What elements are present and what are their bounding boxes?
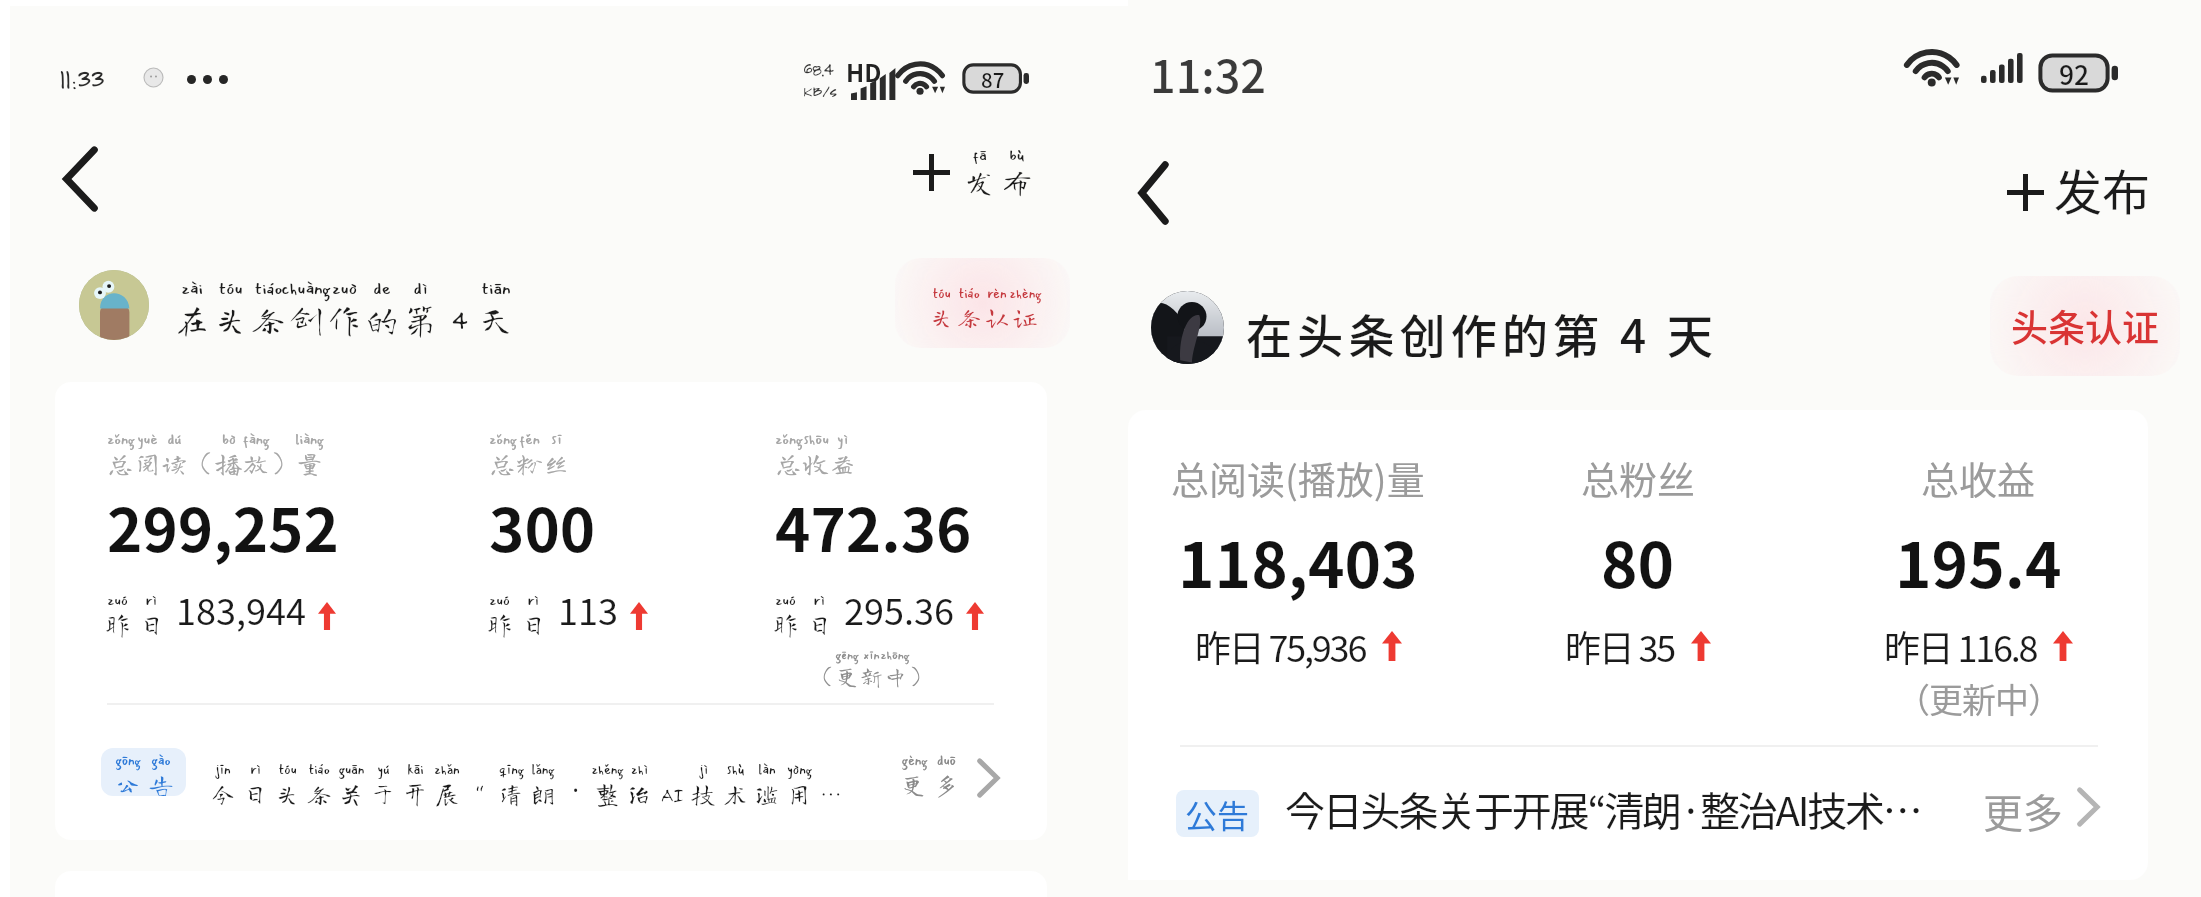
staticText: 布 xyxy=(1002,167,1032,197)
staticText: 总收益 xyxy=(1921,450,2036,505)
staticText: 昨日 116.8 xyxy=(1884,620,2037,672)
staticText: 299,252 xyxy=(107,482,339,569)
staticText: 在 xyxy=(175,302,209,336)
staticText: tiān xyxy=(481,275,511,302)
staticText: 播 xyxy=(215,450,242,476)
staticText: fā xyxy=(972,143,987,167)
staticText: 条 xyxy=(957,305,981,329)
staticText: zuò xyxy=(332,275,357,302)
staticText: 证 xyxy=(1013,305,1037,329)
button[interactable]: Back xyxy=(33,131,129,227)
staticText: … xyxy=(818,781,844,806)
staticText: HD xyxy=(846,54,882,89)
staticText: 80 xyxy=(1601,516,1675,606)
staticText: 治 xyxy=(626,781,652,806)
staticText: 昨 xyxy=(104,611,131,637)
staticText: 昨 xyxy=(486,611,513,637)
staticText: 整 xyxy=(594,781,620,806)
staticText: 创 xyxy=(289,302,323,336)
staticText: 头 xyxy=(213,302,247,336)
staticText: 更多 xyxy=(1983,782,2063,840)
staticText: 今日头条关于开展“清朗·整治AI技术… xyxy=(1285,780,1921,838)
staticText: 68.4 xyxy=(803,58,833,80)
staticText: 472.36 xyxy=(775,482,972,569)
button[interactable]: 发布 xyxy=(1994,148,2154,236)
staticText: 118,403 xyxy=(1178,516,1418,606)
staticText: 发布 xyxy=(2054,154,2151,224)
staticText: 更 xyxy=(901,772,927,797)
staticText: 技 xyxy=(690,781,716,806)
staticText: tóu xyxy=(278,760,297,781)
staticText: （更新中） xyxy=(1896,674,2061,723)
staticText: 更 xyxy=(836,665,859,688)
staticText: 开 xyxy=(402,781,428,806)
button[interactable]: 公告 xyxy=(1128,762,2148,872)
staticText: 昨 xyxy=(772,611,799,637)
staticText: tóu xyxy=(218,275,243,302)
staticText: 4 xyxy=(451,302,466,336)
button[interactable]: Profile photo xyxy=(1151,291,1224,364)
staticText: de xyxy=(373,275,391,302)
staticText: 告 xyxy=(148,772,174,796)
staticText: guān xyxy=(338,760,365,781)
staticText: 92 xyxy=(2059,54,2090,92)
staticText: 11:33 xyxy=(59,61,104,95)
button[interactable]: 在头条创作的第 4 天 xyxy=(1246,300,1719,367)
staticText: xīn xyxy=(863,646,880,665)
staticText: yú xyxy=(377,760,390,781)
staticText: gèng xyxy=(901,751,928,772)
staticText: 天 xyxy=(479,302,513,336)
staticText: 认 xyxy=(985,305,1009,329)
staticText: gōng xyxy=(115,751,141,772)
staticText: yòng xyxy=(787,760,812,781)
staticText: zhōng xyxy=(880,646,910,665)
button[interactable]: tóu xyxy=(895,258,1070,348)
staticText: yuè xyxy=(137,428,158,450)
staticText: 总 xyxy=(107,450,134,476)
staticText: shōu xyxy=(803,428,829,450)
staticText: 113 xyxy=(558,583,618,635)
staticText: qīng xyxy=(499,760,524,781)
staticText: · xyxy=(572,772,579,806)
staticText: 公 xyxy=(115,772,141,796)
staticText: KB/s xyxy=(803,80,837,100)
staticText: shù xyxy=(726,760,745,781)
staticText: liàng xyxy=(295,428,324,450)
staticText: tiáo xyxy=(308,760,330,781)
button[interactable]: Back xyxy=(1106,145,1202,241)
staticText: fěn xyxy=(519,428,540,450)
button[interactable]: zài xyxy=(173,275,515,336)
staticText: zuó xyxy=(775,589,796,611)
staticText: 300 xyxy=(489,482,596,569)
staticText: 295.36 xyxy=(844,583,954,635)
staticText: 多 xyxy=(933,772,959,797)
staticText: 放 xyxy=(242,450,269,476)
staticText: zuó xyxy=(489,589,510,611)
staticText: zǒng xyxy=(489,428,517,450)
staticText: 术 xyxy=(722,781,748,806)
staticText: 昨日 35 xyxy=(1565,620,1675,672)
staticText: 益 xyxy=(829,450,856,476)
button[interactable]: gōng xyxy=(55,727,1047,827)
staticText: 清 xyxy=(498,781,524,806)
staticText: zhì xyxy=(631,760,648,781)
staticText: 作 xyxy=(327,302,361,336)
staticText: rì xyxy=(145,589,157,611)
staticText: 日 xyxy=(242,781,268,806)
button[interactable]: fā xyxy=(903,138,1051,216)
staticText: bù xyxy=(1009,143,1025,167)
staticText: （ xyxy=(188,450,215,476)
staticText: 中 xyxy=(884,665,907,688)
staticText: jīn xyxy=(215,760,231,781)
staticText: zhěng xyxy=(591,760,624,781)
button[interactable]: Profile photo xyxy=(79,270,149,340)
staticText: 总阅读(播放)量 xyxy=(1171,450,1425,505)
button[interactable]: 头条认证 xyxy=(1990,276,2180,376)
staticText: 头 xyxy=(274,781,300,806)
staticText: 日 xyxy=(806,611,833,637)
staticText: zuó xyxy=(107,589,128,611)
staticText: 183,944 xyxy=(176,583,306,635)
staticText: 朗 xyxy=(530,781,556,806)
staticText: 阅 xyxy=(134,450,161,476)
staticText: rì xyxy=(813,589,825,611)
